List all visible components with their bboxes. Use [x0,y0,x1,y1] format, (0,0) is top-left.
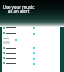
button[interactable]: Setting [2,61,38,66]
staticText: Use your music as an alert [0,4,37,15]
button[interactable]: Setting [2,26,38,31]
button[interactable]: Setting [2,51,38,56]
button[interactable]: Setting [2,31,38,36]
button[interactable]: Setting [2,56,38,61]
button[interactable]: Setting [2,46,38,51]
